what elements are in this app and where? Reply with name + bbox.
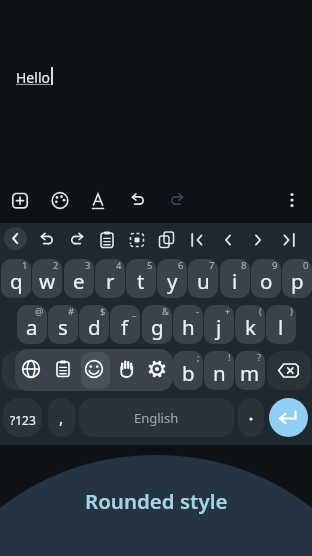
button[interactable]	[126, 188, 150, 212]
staticText: k	[245, 313, 256, 341]
staticText: u	[197, 267, 210, 295]
button[interactable]: r	[95, 259, 125, 298]
button[interactable]: English	[79, 398, 234, 437]
button[interactable]	[15, 349, 173, 391]
staticText: 3	[85, 259, 91, 272]
button[interactable]	[114, 357, 138, 381]
staticText: -	[196, 305, 200, 318]
staticText: y	[167, 267, 178, 295]
staticText: )	[290, 305, 293, 318]
button[interactable]: l	[266, 305, 296, 344]
staticText: f	[121, 313, 129, 341]
button[interactable]: p	[282, 259, 312, 298]
staticText: 0	[303, 259, 309, 272]
staticText: j	[216, 313, 222, 341]
staticText: o	[260, 267, 273, 295]
button[interactable]: m	[235, 351, 265, 390]
button[interactable]: s	[48, 305, 78, 344]
staticText: (	[259, 305, 262, 318]
button[interactable]: k	[235, 305, 265, 344]
staticText: ?123	[10, 412, 36, 428]
button[interactable]: n	[204, 351, 234, 390]
button[interactable]	[153, 226, 181, 254]
button[interactable]: t	[126, 259, 156, 298]
button[interactable]	[244, 226, 272, 254]
staticText: 2	[53, 259, 59, 272]
staticText: $	[100, 305, 106, 318]
button[interactable]	[280, 188, 304, 212]
button[interactable]	[63, 226, 91, 254]
button[interactable]	[48, 188, 72, 212]
staticText: a	[26, 313, 38, 341]
staticText: p	[291, 267, 304, 295]
button[interactable]: o	[251, 259, 281, 298]
staticText: m	[240, 359, 260, 387]
button[interactable]: w	[32, 259, 62, 298]
staticText: r	[106, 267, 115, 295]
button[interactable]	[214, 226, 242, 254]
button[interactable]	[165, 188, 189, 212]
button[interactable]	[86, 188, 110, 212]
button[interactable]: ,	[48, 398, 75, 437]
button[interactable]	[274, 226, 302, 254]
staticText: _	[132, 305, 137, 318]
staticText: !	[228, 351, 231, 364]
button[interactable]	[19, 357, 43, 381]
staticText: w	[39, 267, 56, 295]
staticText: +	[225, 305, 231, 318]
button[interactable]: b	[173, 351, 203, 390]
button[interactable]: Hello	[16, 68, 50, 87]
button[interactable]	[2, 351, 45, 390]
button[interactable]: q	[1, 259, 31, 298]
staticText: n	[213, 359, 226, 387]
button[interactable]	[184, 226, 212, 254]
staticText: Rounded style	[85, 487, 228, 515]
button[interactable]	[8, 188, 32, 212]
button[interactable]: ?123	[3, 398, 42, 437]
staticText: t	[137, 267, 145, 295]
staticText: 1	[22, 259, 28, 272]
button[interactable]	[33, 226, 61, 254]
staticText: English	[134, 409, 179, 427]
button[interactable]: g	[142, 305, 172, 344]
staticText: ?	[257, 351, 262, 364]
staticText: Hello	[16, 68, 50, 87]
button[interactable]	[2, 225, 30, 253]
button[interactable]	[93, 226, 121, 254]
staticText: 6	[178, 259, 184, 272]
staticText: 7	[209, 259, 215, 272]
button[interactable]	[82, 357, 106, 381]
staticText: &	[162, 305, 169, 318]
staticText: s	[58, 313, 68, 341]
staticText: g	[151, 313, 164, 341]
staticText: l	[278, 313, 284, 341]
staticText: q	[10, 267, 23, 295]
staticText: ;	[197, 351, 200, 364]
button[interactable]	[269, 398, 308, 437]
button[interactable]: Rounded style	[0, 487, 312, 515]
staticText: 9	[272, 259, 278, 272]
button[interactable]: h	[173, 305, 203, 344]
button[interactable]: y	[157, 259, 187, 298]
button[interactable]	[123, 226, 151, 254]
button[interactable]	[145, 357, 169, 381]
button[interactable]: a	[17, 305, 47, 344]
button[interactable]: i	[220, 259, 250, 298]
button[interactable]: d	[79, 305, 109, 344]
staticText: i	[232, 267, 238, 295]
button[interactable]: e	[64, 259, 94, 298]
staticText: b	[182, 359, 195, 387]
staticText: 4	[116, 259, 122, 272]
button[interactable]	[267, 351, 311, 390]
button[interactable]: u	[188, 259, 218, 298]
button[interactable]	[51, 357, 75, 381]
staticText: h	[182, 313, 195, 341]
staticText: 5	[147, 259, 153, 272]
staticText: @	[35, 305, 44, 318]
staticText: e	[73, 267, 85, 295]
staticText: d	[88, 313, 101, 341]
staticText: #	[68, 305, 75, 318]
button[interactable]: j	[204, 305, 234, 344]
button[interactable]	[238, 398, 264, 437]
button[interactable]: f	[110, 305, 140, 344]
